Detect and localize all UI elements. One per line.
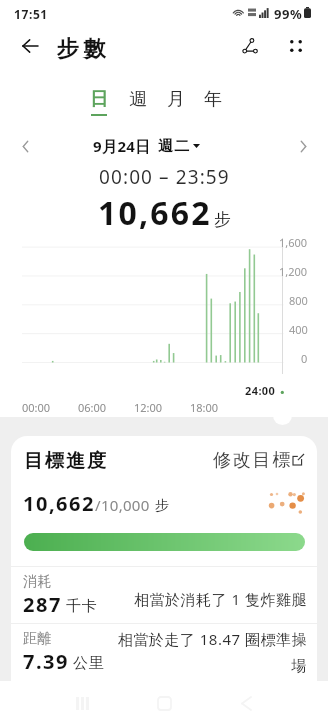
- button[interactable]: Recents: [70, 691, 94, 715]
- staticText: 800: [289, 293, 308, 307]
- staticText: 99%: [274, 5, 303, 20]
- staticText: 相當於消耗了 1 隻炸雞腿: [134, 589, 307, 609]
- staticText: 7.39: [23, 648, 69, 675]
- staticText: 10,662: [23, 490, 95, 517]
- staticText: 修改目標: [213, 449, 293, 470]
- staticText: 目標進度: [23, 449, 107, 473]
- staticText: 距離: [23, 630, 52, 648]
- button[interactable]: Share: [235, 31, 265, 61]
- staticText: 9月24日: [93, 136, 151, 156]
- button[interactable]: 距離: [11, 624, 317, 680]
- button[interactable]: 月: [157, 80, 195, 120]
- button[interactable]: Next day: [290, 133, 316, 159]
- button[interactable]: 年: [194, 80, 232, 120]
- staticText: 1,600: [279, 235, 308, 249]
- button[interactable]: Home: [152, 691, 176, 715]
- staticText: 步數: [54, 35, 108, 63]
- staticText: 消耗: [23, 573, 52, 591]
- staticText: 00:00 – 23:59: [99, 164, 230, 186]
- button[interactable]: 9月24日: [93, 136, 200, 156]
- staticText: 步: [155, 497, 169, 515]
- staticText: 週: [129, 88, 147, 111]
- staticText: 287: [23, 591, 62, 618]
- staticText: 年: [204, 88, 222, 111]
- staticText: 步: [214, 209, 231, 230]
- button[interactable]: 消耗: [11, 567, 317, 623]
- staticText: 10,662: [98, 191, 212, 235]
- button[interactable]: 日: [80, 80, 118, 120]
- button[interactable]: 週: [119, 80, 157, 120]
- staticText: 0: [301, 351, 308, 365]
- staticText: /10,000: [95, 495, 150, 515]
- staticText: 24:00: [245, 383, 276, 397]
- staticText: 17:51: [14, 6, 48, 22]
- staticText: 千卡: [66, 597, 98, 616]
- staticText: 相當於走了 18.47 圈標準操場: [111, 629, 307, 676]
- button[interactable]: Previous day: [12, 133, 38, 159]
- staticText: 日: [90, 88, 108, 111]
- button[interactable]: Back: [15, 31, 45, 61]
- staticText: 00:00: [22, 400, 51, 414]
- staticText: 400: [289, 322, 308, 336]
- staticText: 月: [167, 88, 185, 111]
- staticText: 18:00: [190, 400, 219, 414]
- staticText: 12:00: [134, 400, 163, 414]
- staticText: 1,200: [279, 264, 308, 278]
- staticText: 週二: [158, 137, 191, 156]
- button[interactable]: More options: [281, 31, 311, 61]
- staticText: 06:00: [78, 400, 107, 414]
- staticText: 公里: [73, 654, 105, 673]
- button[interactable]: Add: [273, 406, 292, 425]
- button[interactable]: 修改目標: [213, 449, 304, 470]
